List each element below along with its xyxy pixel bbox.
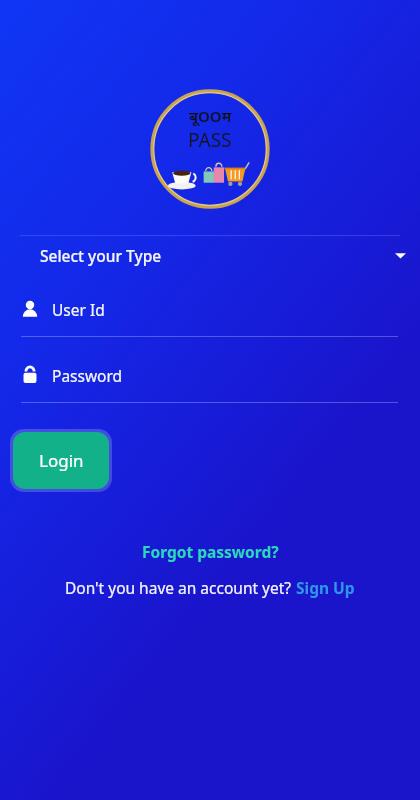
staticText: Password	[52, 365, 123, 386]
button[interactable]: Login	[13, 432, 109, 489]
staticText: Don't you have an account yet?	[65, 577, 296, 598]
staticText: Select your Type	[40, 245, 162, 266]
staticText: User Id	[52, 299, 105, 320]
staticText: Sign Up	[296, 577, 355, 598]
button[interactable]: User	[0, 293, 420, 337]
staticText: बूOOम	[189, 106, 232, 126]
staticText: Forgot password?	[142, 541, 279, 562]
staticText: Login	[39, 449, 84, 472]
other: User	[21, 300, 39, 318]
other: Open type selector	[395, 250, 406, 261]
staticText: PASS	[188, 127, 232, 153]
button[interactable]: Select your Type	[0, 235, 420, 275]
button[interactable]: Forgot password?	[134, 538, 287, 565]
button[interactable]: Sign Up	[296, 577, 355, 598]
button[interactable]: Password	[0, 359, 420, 403]
other: Password	[21, 366, 39, 384]
